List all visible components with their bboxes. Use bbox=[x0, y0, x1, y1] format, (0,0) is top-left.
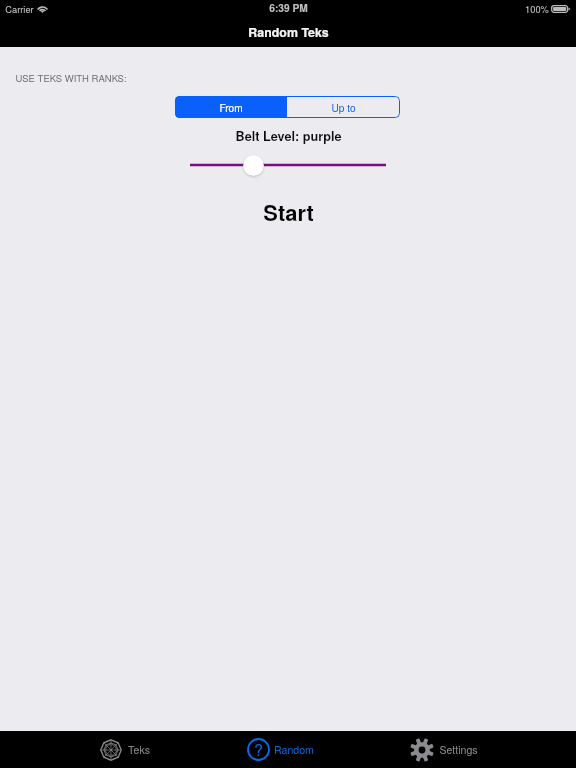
other: Teks bbox=[100, 739, 122, 761]
staticText: From bbox=[219, 100, 243, 114]
staticText: Random Teks bbox=[248, 23, 329, 41]
button[interactable]: From bbox=[175, 96, 287, 118]
staticText: 100% bbox=[525, 2, 549, 15]
button[interactable]: Teks bbox=[100, 731, 150, 768]
button[interactable]: Settings bbox=[410, 731, 478, 768]
button[interactable]: Belt level slider bbox=[243, 155, 264, 176]
other: Random bbox=[247, 738, 270, 761]
button[interactable]: Up to bbox=[287, 96, 400, 118]
staticText: Teks bbox=[128, 742, 150, 757]
staticText: 6:39 PM bbox=[269, 1, 308, 16]
staticText: Belt Level: purple bbox=[235, 127, 342, 145]
staticText: Carrier bbox=[5, 2, 34, 15]
staticText: ? bbox=[254, 738, 263, 761]
staticText: Start bbox=[263, 196, 314, 227]
staticText: Random bbox=[274, 742, 314, 757]
staticText: Settings bbox=[439, 742, 478, 757]
other: Settings bbox=[410, 738, 434, 762]
staticText: USE TEKS WITH RANKS: bbox=[15, 71, 127, 85]
button[interactable]: Random bbox=[247, 731, 314, 768]
staticText: Up to bbox=[331, 100, 356, 114]
button[interactable]: Start bbox=[263, 196, 314, 227]
